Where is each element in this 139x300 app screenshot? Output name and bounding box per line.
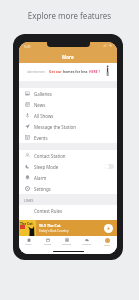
- button[interactable]: Settings: [19, 183, 117, 194]
- staticText: Today's Best Country: [39, 229, 69, 233]
- staticText: Get our: [49, 69, 62, 74]
- button[interactable]: Alarm: [19, 172, 117, 183]
- button[interactable]: Contest Rules: [19, 205, 117, 216]
- staticText: advertisement: [27, 70, 45, 74]
- button[interactable]: News: [19, 99, 117, 110]
- staticText: All Shows: [34, 113, 54, 119]
- staticText: Galleries: [34, 91, 52, 97]
- button[interactable]: All Shows: [19, 110, 117, 121]
- staticText: News: [34, 102, 46, 108]
- staticText: Explore more features: [0, 10, 139, 21]
- staticText: Listen: [25, 243, 32, 246]
- button[interactable]: Contests: [77, 236, 97, 249]
- button[interactable]: Recent: [38, 236, 57, 249]
- button[interactable]: Sleep Mode: [19, 161, 117, 172]
- staticText: Recent: [44, 243, 52, 246]
- staticText: !: [99, 69, 100, 74]
- staticText: More: [104, 244, 110, 247]
- button[interactable]: Message the Station: [19, 121, 117, 132]
- staticText: Contests: [82, 243, 92, 246]
- staticText: Events: [34, 135, 48, 141]
- staticText: More: [62, 54, 74, 60]
- button[interactable]: Events: [19, 132, 117, 143]
- staticText: LINKS: [24, 198, 34, 203]
- staticText: HERE: [89, 69, 98, 74]
- staticText: Settings: [34, 186, 51, 192]
- staticText: Message the Station: [34, 124, 76, 130]
- staticText: Alarm: [34, 175, 47, 181]
- staticText: The Cat: [20, 221, 33, 226]
- button[interactable]: Play: [104, 224, 113, 233]
- staticText: 9:41: [24, 44, 31, 49]
- staticText: Sleep Mode: [34, 164, 59, 170]
- button[interactable]: Rewards: [57, 236, 77, 249]
- button[interactable]: More: [97, 236, 117, 249]
- staticText: 96.9 The Cat: [39, 223, 61, 228]
- button[interactable]: Listen: [19, 236, 38, 249]
- staticText: Contest Rules: [34, 208, 63, 214]
- button[interactable]: Contact Station: [19, 150, 117, 161]
- staticText: homes for less: [63, 69, 88, 74]
- staticText: Rewards: [62, 243, 72, 246]
- button[interactable]: Galleries: [19, 88, 117, 99]
- button[interactable]: The Cat: [19, 220, 117, 236]
- staticText: Contact Station: [34, 153, 66, 159]
